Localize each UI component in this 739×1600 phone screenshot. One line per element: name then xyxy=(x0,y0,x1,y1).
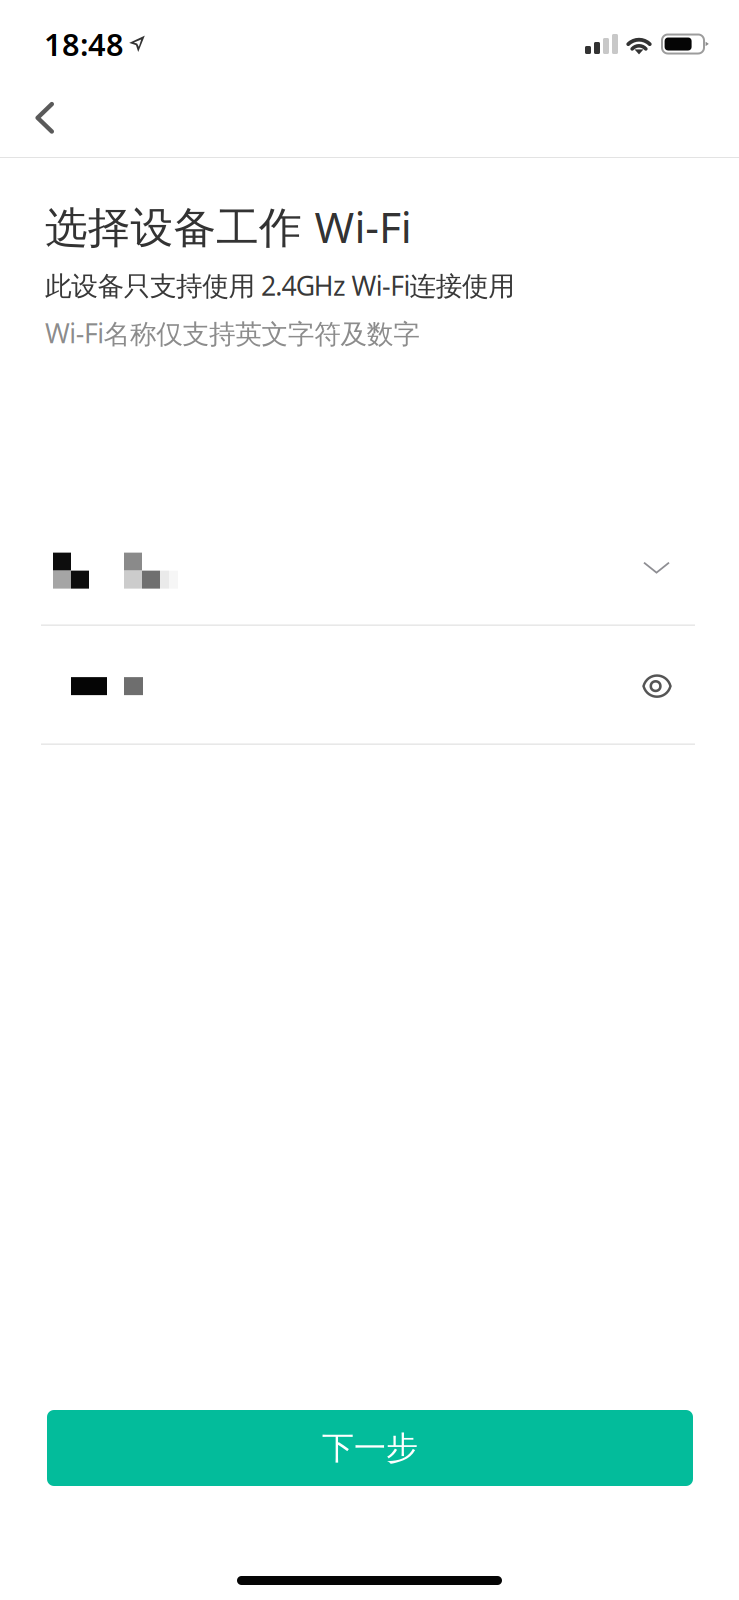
button[interactable]: Back xyxy=(0,88,76,157)
staticText: Wi-Fi名称仅支持英文字符及数字 xyxy=(45,315,420,351)
button[interactable]: Wi-Fi name xyxy=(0,535,739,625)
staticText: 下一步 xyxy=(322,1428,418,1468)
button[interactable]: Wi-Fi password, show password xyxy=(0,626,739,744)
button[interactable]: 下一步 xyxy=(0,1410,739,1486)
staticText: 此设备只支持使用 2.4GHz Wi-Fi连接使用 xyxy=(45,268,515,303)
staticText: 18:48 xyxy=(44,24,124,64)
staticText: 选择设备工作 Wi-Fi xyxy=(45,198,412,255)
